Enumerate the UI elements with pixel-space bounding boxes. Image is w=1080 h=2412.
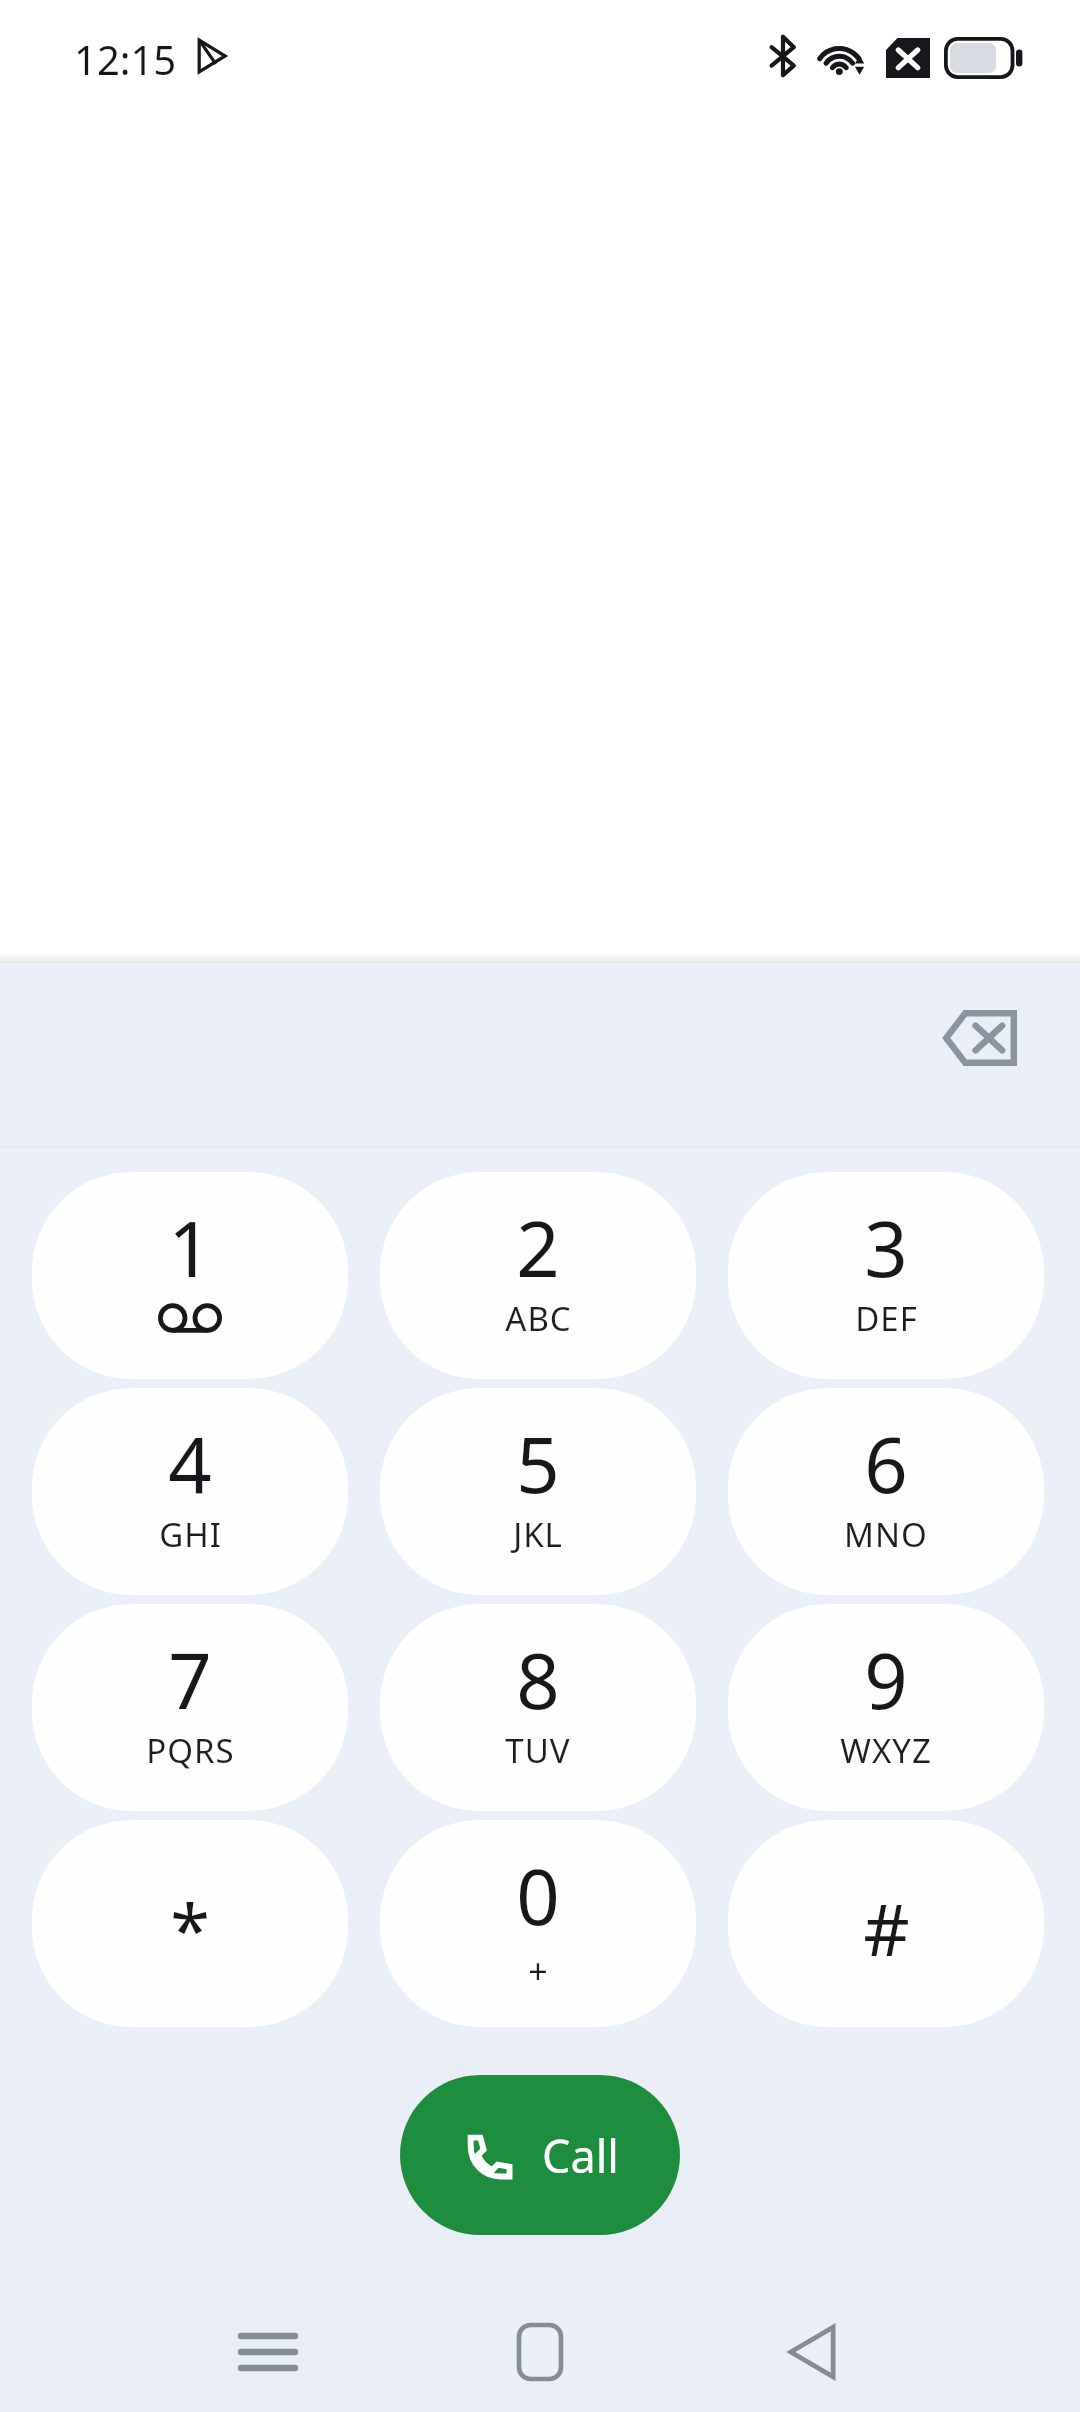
button[interactable]: 2 [380,1172,696,1379]
button[interactable]: * [32,1820,348,2027]
staticText: 4 [168,1412,212,1516]
staticText: DEF [855,1296,918,1341]
staticText: JKL [513,1512,563,1557]
button[interactable]: Backspace [905,963,1055,1113]
staticText: + [528,1948,549,1994]
button[interactable]: Back [737,2292,887,2412]
staticText: 7 [168,1628,212,1732]
staticText: 12:15 [74,32,177,86]
staticText: * [170,1879,210,1977]
staticText: Call [542,2125,619,2186]
staticText: 5 [516,1412,560,1516]
staticText: WXYZ [840,1728,932,1773]
staticText: # [863,1879,910,1977]
staticText: 3 [864,1196,908,1300]
button[interactable]: 5 [380,1388,696,1595]
staticText: 1 [168,1196,212,1300]
staticText: PQRS [146,1728,235,1773]
button[interactable]: 4 [32,1388,348,1595]
staticText: 6 [864,1412,908,1516]
button[interactable]: 3 [728,1172,1044,1379]
staticText: GHI [159,1512,222,1557]
button[interactable]: Recent apps [193,2292,343,2412]
button[interactable]: Home [465,2292,615,2412]
staticText: 0 [516,1844,560,1948]
button[interactable]: 8 [380,1604,696,1811]
staticText: 9 [864,1628,908,1732]
button[interactable]: 0 [380,1820,696,2027]
button[interactable]: 6 [728,1388,1044,1595]
button[interactable]: 7 [32,1604,348,1811]
button[interactable]: # [728,1820,1044,2027]
staticText: MNO [844,1512,928,1557]
staticText: ABC [505,1296,572,1341]
button[interactable]: Call [400,2075,680,2235]
button[interactable]: 9 [728,1604,1044,1811]
button[interactable]: 1 [32,1172,348,1379]
staticText: 2 [516,1196,560,1300]
staticText: 8 [516,1628,560,1732]
staticText: TUV [505,1728,571,1773]
